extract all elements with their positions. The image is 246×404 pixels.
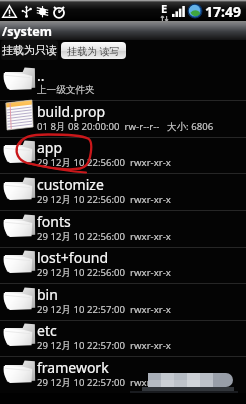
staticText: 29 12月 10 22:56:00 rwxr-xr-x [37, 230, 171, 243]
staticText: etc [37, 321, 57, 340]
staticText: 29 12月 10 22:57:00 rwxr-xr-x [37, 376, 171, 389]
button[interactable]: 挂载为只读 [1, 40, 58, 60]
staticText: fonts [37, 212, 71, 231]
staticText: 29 12月 10 22:57:00 rwxr-xr-x [37, 339, 171, 352]
staticText: 挂载为 读写 [67, 44, 120, 58]
button[interactable]: .. [0, 64, 246, 100]
staticText: build.prop [37, 102, 106, 121]
button[interactable]: etc [0, 320, 246, 356]
staticText: /system [2, 23, 52, 40]
staticText: 29 12月 10 22:57:00 rwxr-xr-x [37, 303, 171, 316]
staticText: bin [37, 285, 58, 304]
staticText: 01 8月 08 20:00:00 rw-r--r-- 大小: 6806 [37, 120, 214, 133]
button[interactable]: 挂载为 读写 [61, 42, 126, 59]
staticText: 上一级文件夹 [37, 84, 95, 96]
staticText: E [161, 1, 168, 16]
staticText: 29 12月 10 22:56:00 rwxr-xr-x [37, 193, 171, 206]
staticText: app [37, 138, 63, 157]
staticText: customize [37, 175, 104, 194]
staticText: 挂载为只读 [2, 43, 57, 57]
staticText: .. [37, 66, 45, 85]
staticText: 29 12月 10 22:56:00 rwxr-xr-x [37, 156, 171, 169]
staticText: lost+found [37, 248, 109, 267]
button[interactable]: fonts [0, 211, 246, 247]
staticText: 29 12月 10 22:56:00 rwxr-xr-x [37, 266, 171, 279]
button[interactable]: lost+found [0, 247, 246, 283]
button[interactable]: app [0, 137, 246, 173]
button[interactable]: framework [0, 357, 246, 393]
staticText: framework [37, 358, 109, 377]
button[interactable]: bin [0, 284, 246, 320]
button[interactable]: customize [0, 174, 246, 210]
staticText: 17:49 [205, 2, 241, 21]
button[interactable]: build.prop [0, 101, 246, 137]
